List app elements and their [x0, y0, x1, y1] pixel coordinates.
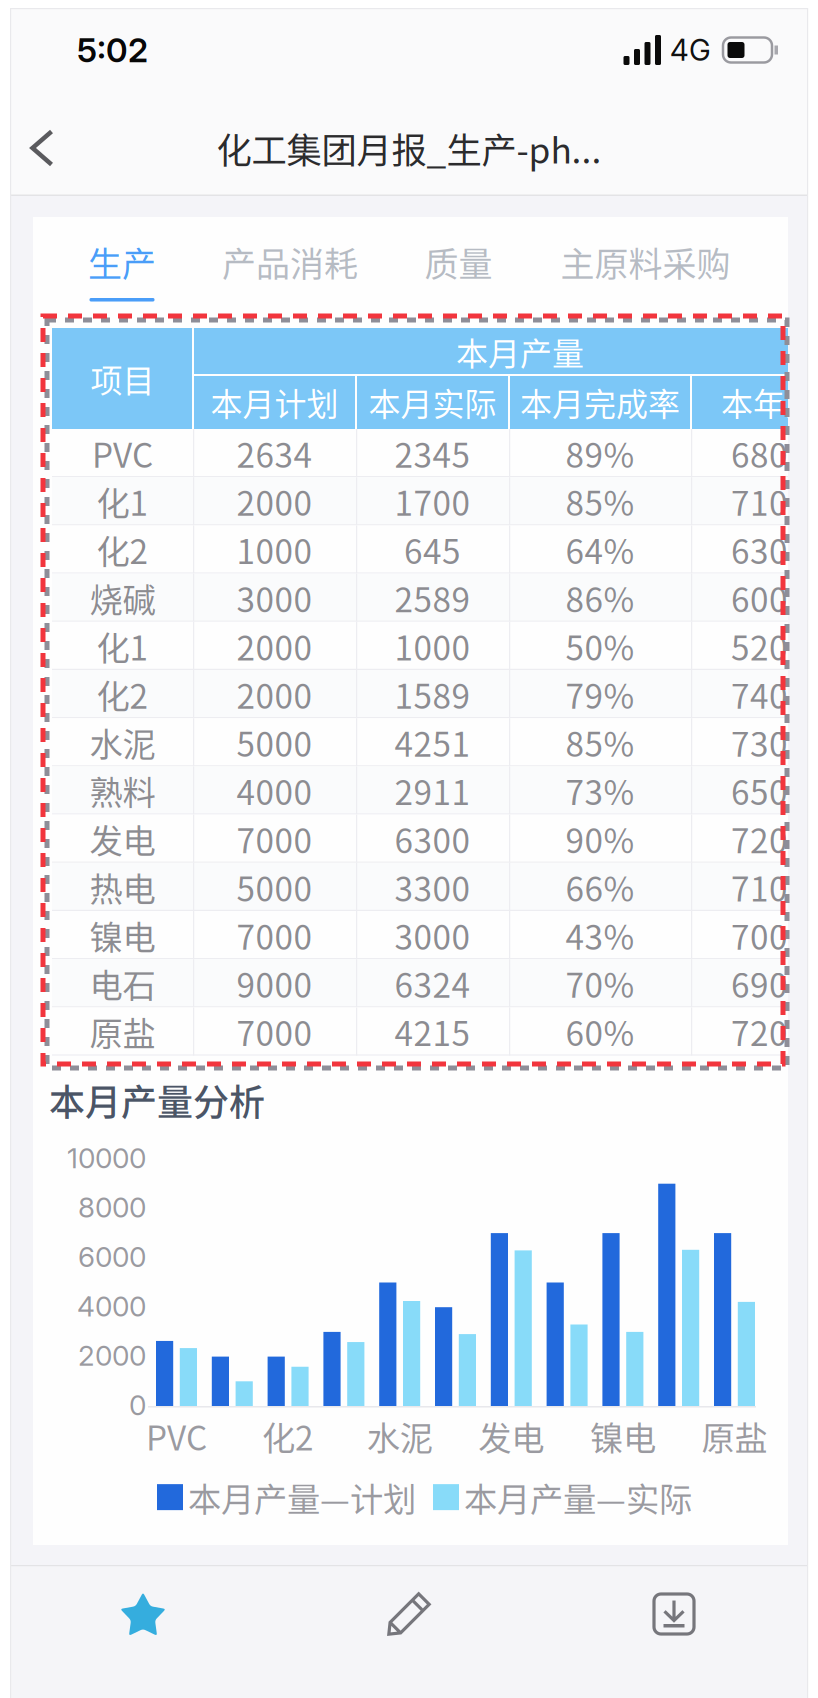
- staticText: 645: [404, 525, 461, 574]
- staticText: 发电: [89, 815, 155, 863]
- staticText: 1700: [394, 477, 470, 525]
- staticText: 85%: [565, 718, 634, 766]
- staticText: 85%: [565, 477, 634, 525]
- staticText: 6500: [731, 766, 807, 815]
- staticText: 4G: [670, 32, 711, 68]
- staticText: 10000: [67, 1141, 146, 1175]
- staticText: 79%: [565, 670, 634, 718]
- staticText: 7000: [236, 815, 312, 863]
- staticText: 7200: [731, 1007, 807, 1056]
- staticText: 本月产量: [456, 328, 584, 375]
- staticText: 7200: [731, 815, 807, 863]
- staticText: 本月完成率: [520, 379, 680, 425]
- staticText: 化1: [96, 477, 148, 525]
- staticText: 本月计划: [210, 379, 338, 425]
- staticText: 发电: [478, 1412, 544, 1460]
- button[interactable]: Download: [589, 1564, 759, 1664]
- staticText: 2000: [78, 1339, 146, 1373]
- staticText: 6000: [78, 1240, 146, 1274]
- staticText: 1589: [394, 670, 470, 718]
- staticText: 化2: [96, 525, 148, 574]
- staticText: 4215: [394, 1007, 470, 1056]
- staticText: 6000: [731, 574, 807, 622]
- staticText: 6900: [731, 959, 807, 1007]
- staticText: 5000: [236, 863, 312, 911]
- staticText: 熟料: [89, 766, 155, 815]
- staticText: 3300: [394, 863, 470, 911]
- staticText: 水泥: [89, 718, 155, 766]
- staticText: 本月实际: [368, 379, 496, 425]
- staticText: 本月产量—实际: [464, 1473, 692, 1521]
- staticText: 化工集团月报_生产-ph...: [216, 122, 601, 174]
- staticText: 3000: [394, 911, 470, 959]
- staticText: 本月产量—计划: [188, 1473, 416, 1521]
- staticText: 6800: [731, 429, 807, 477]
- staticText: 2345: [394, 429, 470, 477]
- staticText: 镍电: [89, 911, 155, 959]
- staticText: 原盐: [89, 1007, 155, 1056]
- button[interactable]: 质量: [412, 217, 505, 326]
- staticText: 项目: [90, 355, 154, 402]
- staticText: 本月产量分析: [49, 1074, 265, 1126]
- staticText: 0: [129, 1388, 146, 1422]
- staticText: 原盐: [701, 1412, 767, 1460]
- staticText: PVC: [146, 1412, 207, 1460]
- staticText: 1000: [394, 622, 470, 670]
- staticText: 化2: [262, 1412, 314, 1460]
- staticText: 2911: [394, 766, 470, 815]
- staticText: 2589: [394, 574, 470, 622]
- staticText: 7100: [731, 477, 807, 525]
- staticText: 质量: [424, 237, 492, 287]
- staticText: 5:02: [77, 30, 148, 70]
- staticText: 电石: [89, 959, 155, 1007]
- button[interactable]: 生产: [77, 217, 167, 326]
- button[interactable]: Back: [0, 102, 84, 194]
- staticText: 1000: [236, 525, 312, 574]
- staticText: 7000: [236, 911, 312, 959]
- staticText: 生产: [88, 237, 156, 287]
- staticText: 73%: [565, 766, 634, 815]
- staticText: 70%: [565, 959, 634, 1007]
- staticText: 9000: [236, 959, 312, 1007]
- staticText: 6300: [731, 525, 807, 574]
- staticText: 86%: [565, 574, 634, 622]
- staticText: 2000: [236, 670, 312, 718]
- staticText: 8000: [78, 1190, 146, 1224]
- staticText: 5200: [731, 622, 807, 670]
- button[interactable]: 产品消耗: [209, 217, 371, 326]
- staticText: 7300: [731, 718, 807, 766]
- staticText: 主原料采购: [560, 237, 730, 287]
- staticText: 60%: [565, 1007, 634, 1056]
- button[interactable]: Favorite: [58, 1565, 228, 1665]
- staticText: 2000: [236, 477, 312, 525]
- staticText: 89%: [565, 429, 634, 477]
- staticText: 5000: [236, 718, 312, 766]
- staticText: 4251: [394, 718, 470, 766]
- staticText: 3000: [236, 574, 312, 622]
- staticText: 化1: [96, 622, 148, 670]
- staticText: 7000: [731, 911, 807, 959]
- staticText: 64%: [565, 525, 634, 574]
- staticText: 化2: [96, 670, 148, 718]
- staticText: 7000: [236, 1007, 312, 1056]
- staticText: 烧碱: [89, 574, 155, 622]
- staticText: 7400: [731, 670, 807, 718]
- staticText: 66%: [565, 863, 634, 911]
- staticText: 43%: [565, 911, 634, 959]
- staticText: 2000: [236, 622, 312, 670]
- staticText: 产品消耗: [222, 237, 358, 287]
- staticText: 2634: [236, 429, 312, 477]
- staticText: 4000: [236, 766, 312, 815]
- staticText: 本年累: [721, 379, 817, 425]
- button[interactable]: 主原料采购: [547, 217, 744, 326]
- staticText: 4000: [77, 1289, 146, 1323]
- staticText: 热电: [89, 863, 155, 911]
- staticText: 6324: [394, 959, 470, 1007]
- staticText: 水泥: [367, 1412, 433, 1460]
- staticText: 镍电: [590, 1412, 656, 1460]
- staticText: 90%: [565, 815, 634, 863]
- staticText: PVC: [92, 429, 153, 477]
- staticText: 7100: [731, 863, 807, 911]
- button[interactable]: Edit: [324, 1564, 494, 1664]
- staticText: 50%: [565, 622, 634, 670]
